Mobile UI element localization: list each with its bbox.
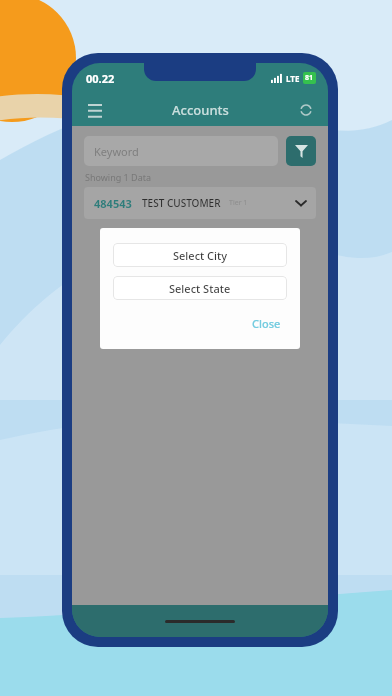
button[interactable]: 484543	[84, 187, 316, 219]
staticText: TEST CUSTOMER	[142, 196, 221, 210]
button[interactable]: Select State	[113, 276, 287, 300]
staticText: Tier 1	[229, 198, 248, 208]
button[interactable]: Filter	[286, 136, 316, 166]
staticText: LTE	[286, 73, 300, 84]
staticText: Keyword	[94, 144, 139, 159]
staticText: 81	[305, 73, 314, 83]
staticText: Close	[252, 316, 281, 331]
staticText: 00.22	[86, 71, 115, 86]
staticText: Select City	[173, 248, 228, 263]
button[interactable]: Select City	[113, 243, 287, 267]
button[interactable]: Keyword	[84, 136, 278, 166]
staticText: 484543	[94, 196, 132, 211]
button[interactable]: Menu	[80, 95, 110, 125]
staticText: Showing 1 Data	[85, 171, 152, 183]
staticText: Select State	[169, 281, 231, 296]
button[interactable]: Close	[246, 313, 287, 334]
button[interactable]: Refresh	[292, 96, 320, 124]
staticText: Accounts	[172, 101, 229, 119]
